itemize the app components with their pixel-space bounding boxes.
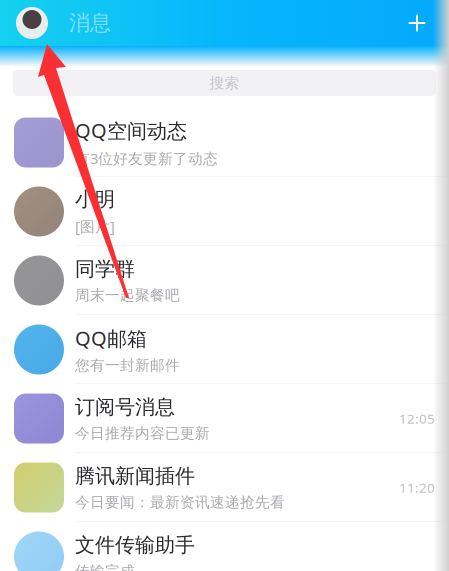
button[interactable]: 小明	[0, 177, 449, 246]
staticText: 您有一封新邮件	[75, 356, 180, 374]
staticText: 传输完成	[75, 562, 135, 571]
staticText: 周末一起聚餐吧	[75, 286, 180, 304]
staticText: 搜索	[209, 74, 239, 92]
staticText: [图片]	[75, 216, 115, 236]
staticText: 12:05	[399, 410, 435, 427]
staticText: 订阅号消息	[75, 395, 175, 419]
staticText: 今日要闻：最新资讯速递抢先看	[75, 493, 285, 511]
button[interactable]: 同学群	[0, 246, 449, 315]
staticText: QQ邮箱	[75, 325, 147, 351]
button[interactable]: 订阅号消息	[0, 384, 449, 453]
staticText: 文件传输助手	[75, 533, 195, 557]
staticText: 小明	[75, 187, 115, 212]
staticText: QQ空间动态	[75, 117, 187, 144]
button[interactable]: Add	[395, 1, 439, 45]
staticText: 11:20	[399, 479, 435, 496]
staticText: 同学群	[75, 257, 135, 281]
button[interactable]: 腾讯新闻插件	[0, 453, 449, 522]
button[interactable]: 搜索	[13, 70, 436, 96]
staticText: 有3位好友更新了动态	[75, 149, 218, 168]
staticText: 今日推荐内容已更新	[75, 424, 210, 442]
staticText: 腾讯新闻插件	[75, 464, 195, 488]
button[interactable]: QQ邮箱	[0, 315, 449, 384]
button[interactable]: QQ空间动态	[0, 108, 449, 177]
button[interactable]: Profile	[9, 0, 55, 46]
button[interactable]: 文件传输助手	[0, 522, 449, 571]
staticText: 消息	[69, 10, 111, 36]
